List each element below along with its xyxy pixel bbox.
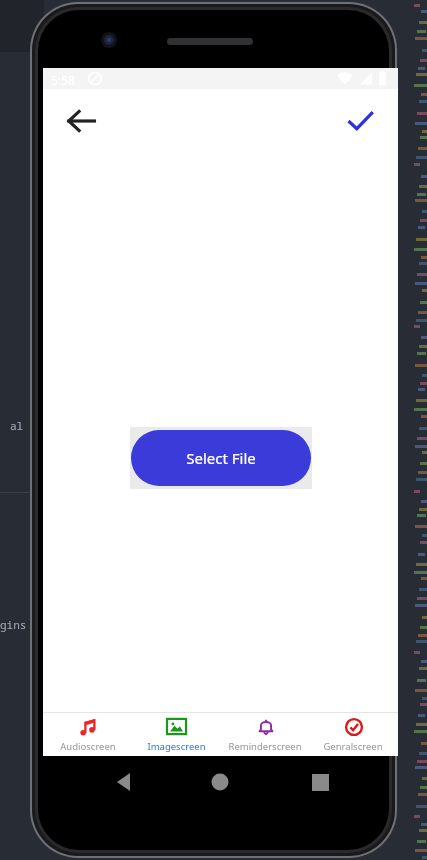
button[interactable]: Select File [130,427,312,489]
staticText: Select File [186,448,256,468]
button[interactable]: Reminderscreen [221,713,309,756]
button[interactable]: Genralscreen [309,713,397,756]
staticText: gins [0,617,27,632]
staticText: Imagescreen [147,740,206,753]
staticText: 5:58 [51,72,75,88]
button[interactable]: Back [65,105,97,137]
button[interactable]: Imagescreen [132,713,220,756]
button[interactable]: Confirm [344,105,376,137]
staticText: Reminderscreen [228,740,302,753]
staticText: Genralscreen [323,740,383,753]
staticText: al [10,418,24,433]
button[interactable]: Audioscreen [44,713,132,756]
staticText: Audioscreen [60,740,116,753]
